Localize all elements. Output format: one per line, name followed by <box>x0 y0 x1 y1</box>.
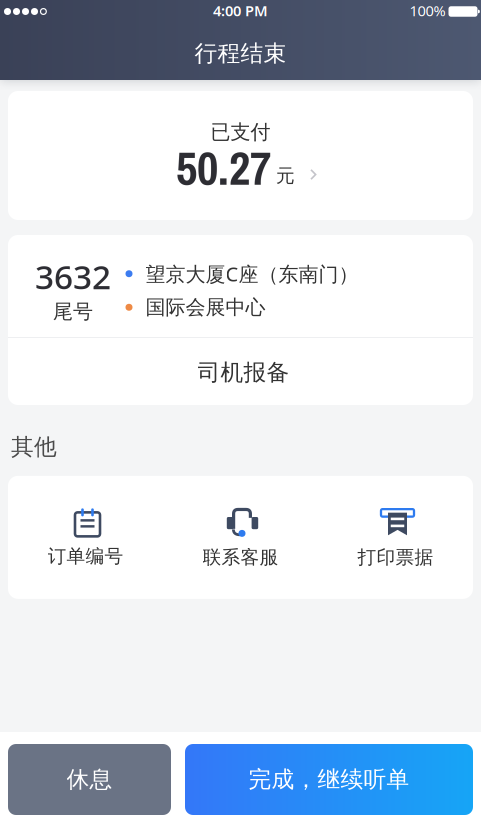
staticText: 元 <box>276 164 295 187</box>
staticText: 4:00 PM <box>213 1 268 20</box>
staticText: 50.27 <box>176 136 271 199</box>
staticText: 休息 <box>66 766 112 793</box>
staticText: 联系客服 <box>202 546 278 569</box>
staticText: 国际会展中心 <box>145 295 265 320</box>
staticText: 望京大厦C座（东南门） <box>145 260 358 287</box>
staticText: 订单编号 <box>47 545 123 568</box>
staticText: 已支付 <box>210 120 270 144</box>
button[interactable]: 休息 <box>8 744 171 815</box>
button[interactable]: 订单编号 <box>8 507 163 568</box>
staticText: 行程结束 <box>194 40 286 67</box>
staticText: 打印票据 <box>357 546 433 569</box>
staticText: 尾号 <box>53 299 93 324</box>
staticText: 其他 <box>11 433 57 461</box>
button[interactable]: 司机报备 <box>8 338 473 405</box>
button[interactable]: 已支付 <box>8 91 473 220</box>
staticText: 司机报备 <box>197 359 289 386</box>
staticText: 3632 <box>35 254 111 298</box>
button[interactable]: 打印票据 <box>318 506 473 569</box>
button[interactable]: 联系客服 <box>163 506 318 569</box>
staticText: 完成，继续听单 <box>248 766 409 793</box>
staticText: 100% <box>409 1 445 20</box>
button[interactable]: 完成，继续听单 <box>185 744 473 815</box>
